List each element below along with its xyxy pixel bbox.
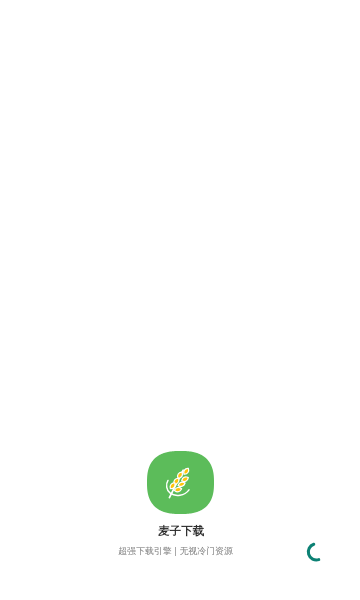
staticText: 麦子下载 bbox=[158, 524, 204, 538]
other: Loading bbox=[306, 541, 327, 562]
staticText: 超强下载引擎 | 无视冷门资源 bbox=[118, 544, 233, 556]
